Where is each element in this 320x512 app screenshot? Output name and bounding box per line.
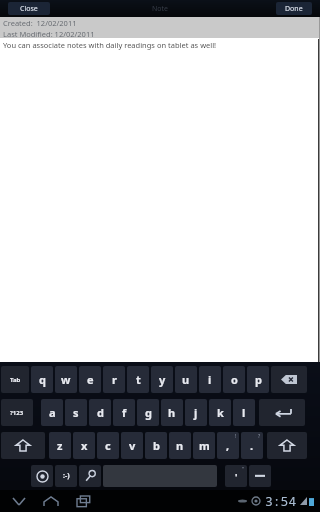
staticText: e — [87, 372, 94, 387]
button[interactable]: i — [199, 366, 221, 393]
button[interactable]: , — [217, 432, 239, 459]
staticText: m — [199, 438, 210, 453]
staticText: f — [122, 405, 127, 420]
button[interactable]: Hide keyboard — [249, 465, 271, 487]
staticText: r — [112, 372, 117, 387]
staticText: g — [145, 405, 152, 420]
staticText: Done — [285, 4, 303, 14]
button[interactable]: Done — [276, 2, 312, 15]
button[interactable]: Voice input — [79, 465, 101, 487]
button[interactable]: Shift — [267, 432, 307, 459]
button[interactable]: y — [151, 366, 173, 393]
staticText: b — [153, 438, 160, 453]
button[interactable]: w — [55, 366, 77, 393]
button[interactable]: m — [193, 432, 215, 459]
staticText: q — [39, 372, 46, 387]
staticText: ? — [258, 433, 261, 440]
staticText: a — [49, 405, 56, 420]
button[interactable]: Close — [8, 2, 50, 15]
staticText: k — [217, 405, 224, 420]
button[interactable]: d — [89, 399, 111, 426]
button[interactable]: r — [103, 366, 125, 393]
button[interactable]: n — [169, 432, 191, 459]
staticText: l — [242, 405, 246, 420]
button[interactable]: Shift — [1, 432, 45, 459]
button[interactable]: . — [241, 432, 263, 459]
staticText: u — [182, 372, 190, 387]
button[interactable]: ?123 — [1, 399, 33, 426]
button[interactable]: q — [31, 366, 53, 393]
button[interactable]: Settings — [31, 465, 53, 487]
staticText: t — [136, 372, 141, 387]
button[interactable]: o — [223, 366, 245, 393]
staticText: n — [176, 438, 184, 453]
button[interactable]: z — [49, 432, 71, 459]
staticText: i — [208, 372, 212, 387]
staticText: w — [61, 372, 71, 387]
staticText: v — [129, 438, 136, 453]
button[interactable]: k — [209, 399, 231, 426]
button[interactable]: e — [79, 366, 101, 393]
button[interactable]: :-) — [55, 465, 77, 487]
button[interactable]: Backspace — [271, 366, 307, 393]
staticText: Last Modified: 12/02/2011 — [3, 29, 95, 38]
button[interactable]: ' — [225, 465, 247, 487]
button[interactable]: u — [175, 366, 197, 393]
button[interactable]: b — [145, 432, 167, 459]
staticText: ?123 — [10, 409, 24, 417]
button[interactable]: v — [121, 432, 143, 459]
staticText: You can associate notes with daily readi… — [3, 40, 217, 50]
staticText: Created: 12/02/2011 — [3, 18, 77, 28]
button[interactable]: j — [185, 399, 207, 426]
staticText: j — [194, 405, 198, 420]
button[interactable]: h — [161, 399, 183, 426]
button[interactable]: t — [127, 366, 149, 393]
button[interactable]: Tab — [1, 366, 29, 393]
button[interactable]: Back — [8, 490, 30, 512]
staticText: s — [73, 405, 79, 420]
staticText: Note — [152, 4, 169, 14]
staticText: z — [57, 438, 63, 453]
button[interactable]: Enter — [259, 399, 305, 426]
staticText: 3:54 — [265, 492, 297, 510]
staticText: d — [97, 405, 104, 420]
button[interactable]: l — [233, 399, 255, 426]
button[interactable]: x — [73, 432, 95, 459]
staticText: c — [105, 438, 111, 453]
staticText: :-) — [63, 471, 70, 481]
staticText: . — [250, 438, 254, 453]
staticText: " — [242, 466, 245, 473]
staticText: ! — [235, 433, 237, 440]
staticText: Close — [20, 4, 38, 14]
button[interactable]: f — [113, 399, 135, 426]
staticText: p — [255, 372, 262, 387]
button[interactable]: a — [41, 399, 63, 426]
button[interactable]: Recent apps — [72, 490, 94, 512]
staticText: ' — [235, 470, 238, 482]
button[interactable]: g — [137, 399, 159, 426]
staticText: y — [159, 372, 166, 387]
button[interactable]: Home — [40, 490, 62, 512]
button[interactable]: p — [247, 366, 269, 393]
staticText: , — [226, 438, 230, 453]
staticText: x — [81, 438, 88, 453]
staticText: h — [168, 405, 176, 420]
button[interactable]: s — [65, 399, 87, 426]
staticText: o — [231, 372, 238, 387]
staticText: Tab — [10, 376, 21, 384]
button[interactable]: c — [97, 432, 119, 459]
